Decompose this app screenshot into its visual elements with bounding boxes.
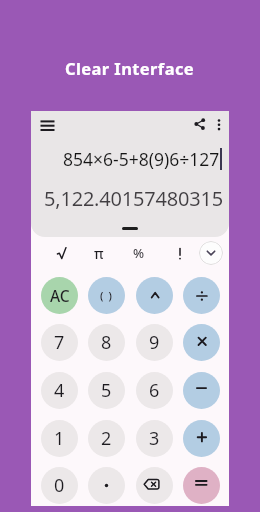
button[interactable] bbox=[88, 467, 125, 504]
button[interactable]: 9 bbox=[136, 324, 173, 361]
staticText: 8 bbox=[101, 330, 112, 355]
button[interactable]: π bbox=[85, 241, 113, 265]
button[interactable]: 5 bbox=[88, 372, 125, 409]
button[interactable] bbox=[183, 372, 220, 409]
button[interactable]: ( ) bbox=[88, 277, 125, 314]
button[interactable] bbox=[136, 467, 173, 504]
staticText: 1 bbox=[54, 426, 65, 451]
button[interactable]: 3 bbox=[136, 420, 173, 457]
button[interactable]: 8 bbox=[88, 324, 125, 361]
button[interactable]: % bbox=[125, 241, 153, 265]
button[interactable] bbox=[193, 117, 207, 131]
button[interactable]: 0 bbox=[41, 467, 78, 504]
button[interactable] bbox=[183, 467, 220, 504]
button[interactable]: 1 bbox=[41, 420, 78, 457]
staticText: 5,122.40157480315 bbox=[44, 185, 223, 211]
button[interactable] bbox=[199, 241, 223, 265]
button[interactable]: 4 bbox=[41, 372, 78, 409]
staticText: π bbox=[94, 244, 104, 263]
staticText: AC bbox=[50, 285, 70, 306]
button[interactable]: 2 bbox=[88, 420, 125, 457]
button[interactable] bbox=[38, 118, 57, 135]
button[interactable] bbox=[136, 277, 173, 314]
button[interactable]: AC bbox=[41, 277, 78, 314]
staticText: 2 bbox=[101, 426, 112, 451]
button[interactable]: 7 bbox=[41, 324, 78, 361]
button[interactable] bbox=[48, 241, 76, 265]
staticText: ( ) bbox=[100, 289, 114, 303]
staticText: 3 bbox=[149, 426, 160, 451]
button[interactable]: 6 bbox=[136, 372, 173, 409]
staticText: Clear Interface bbox=[65, 57, 195, 79]
staticText: 4 bbox=[54, 378, 65, 403]
staticText: 6 bbox=[149, 378, 160, 403]
button[interactable] bbox=[183, 277, 220, 314]
staticText: % bbox=[133, 244, 145, 262]
staticText: 0 bbox=[54, 473, 65, 498]
button[interactable] bbox=[213, 118, 225, 132]
staticText: 5 bbox=[101, 378, 112, 403]
staticText: 854×6-5+8(9)6÷127 bbox=[63, 147, 220, 171]
button[interactable] bbox=[166, 241, 194, 265]
staticText: 7 bbox=[54, 330, 65, 355]
button[interactable] bbox=[183, 420, 220, 457]
button[interactable] bbox=[183, 324, 220, 361]
staticText: 9 bbox=[149, 330, 160, 355]
